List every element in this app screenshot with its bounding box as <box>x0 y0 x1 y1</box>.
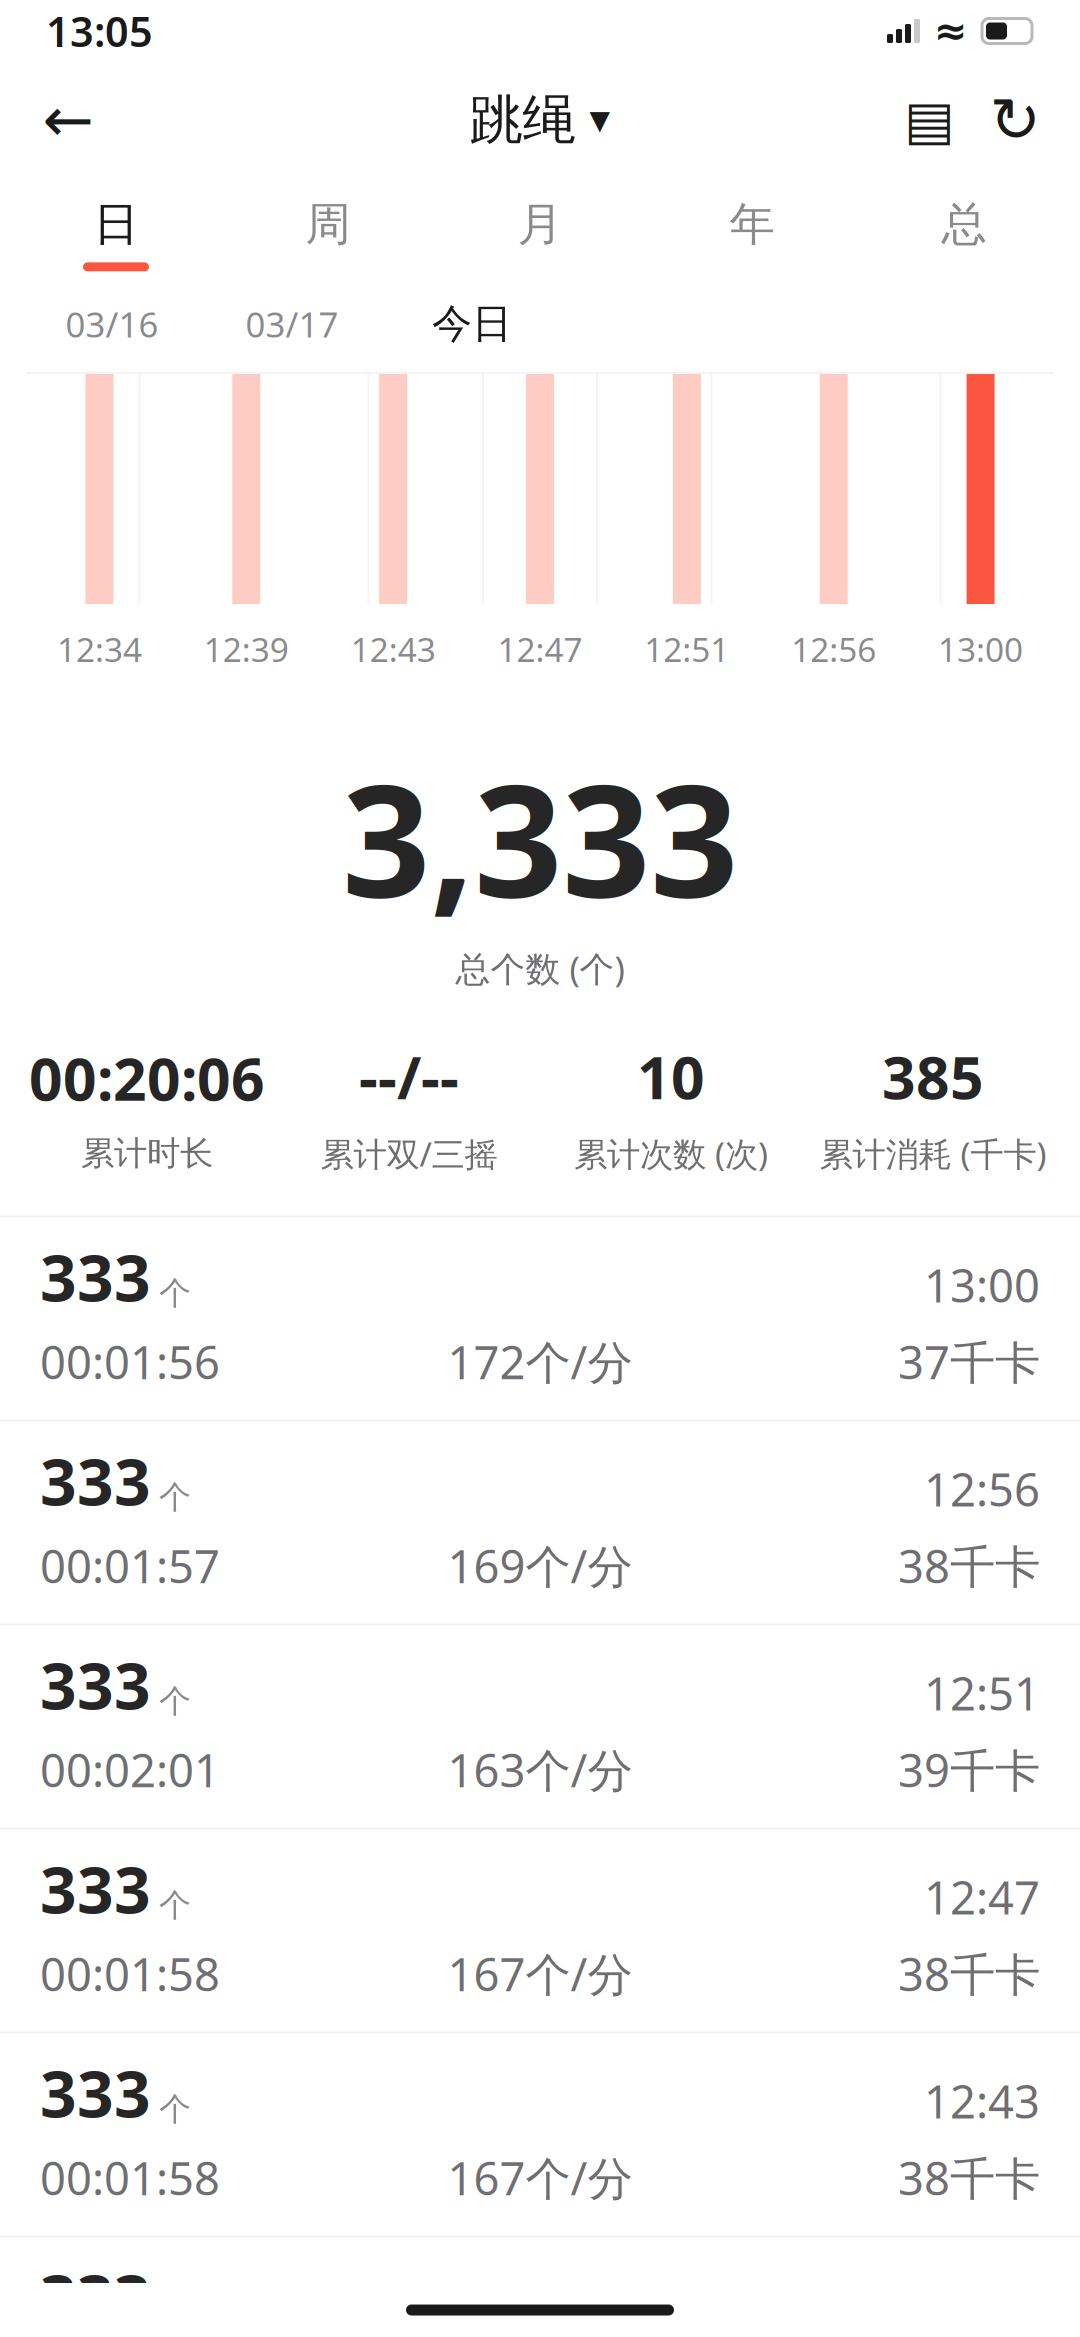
staticText: 13:05 <box>46 4 153 58</box>
staticText: 163个/分 <box>447 1739 632 1800</box>
staticText: 333 <box>40 2254 151 2337</box>
staticText: ≈ <box>934 8 968 54</box>
staticText: 个 <box>159 1682 191 1721</box>
staticText: 总 <box>941 197 986 252</box>
staticText: 00:02:01 <box>40 1739 220 1800</box>
staticText: 333 <box>40 1234 151 1319</box>
staticText: 12:56 <box>924 1459 1040 1519</box>
staticText: 10 <box>637 1037 705 1115</box>
staticText: 12:47 <box>497 627 582 671</box>
staticText: 00:01:57 <box>40 1535 220 1596</box>
staticText: 38千卡 <box>898 2147 1040 2208</box>
staticText: 跳绳 <box>469 87 575 153</box>
button[interactable]: History records <box>886 74 972 166</box>
staticText: 385 <box>882 1037 984 1115</box>
button[interactable]: 日 <box>10 178 222 290</box>
button[interactable]: Sync <box>972 74 1058 166</box>
staticText: 37千卡 <box>898 1331 1040 1392</box>
staticText: ▼ <box>589 105 610 135</box>
staticText: 00:01:58 <box>40 1943 220 2004</box>
staticText: 个 <box>159 2090 191 2129</box>
staticText: 12:39 <box>204 627 289 671</box>
button[interactable]: 333 <box>0 2034 1080 2236</box>
button[interactable]: 333 <box>0 1626 1080 1828</box>
staticText: 169个/分 <box>447 1535 632 1596</box>
staticText: ↻ <box>989 85 1040 155</box>
staticText: 12:51 <box>644 627 729 671</box>
button[interactable]: 333 <box>0 1422 1080 1624</box>
button[interactable]: 月 <box>434 178 646 290</box>
staticText: 累计消耗 (千卡) <box>819 1131 1046 1176</box>
staticText: 333 <box>40 1846 151 1931</box>
staticText: 03/17 <box>245 301 338 347</box>
staticText: 年 <box>729 197 774 252</box>
staticText: 12:51 <box>924 1663 1040 1723</box>
staticText: 个 <box>159 1478 191 1517</box>
staticText: 12:43 <box>924 2071 1040 2131</box>
staticText: 累计双/三摇 <box>320 1131 497 1176</box>
button[interactable]: 333 <box>0 1830 1080 2032</box>
staticText: 个 <box>159 1886 191 1925</box>
staticText: 00:01:58 <box>40 2147 220 2208</box>
staticText: 总个数 (个) <box>455 945 624 991</box>
staticText: 333 <box>40 1642 151 1727</box>
staticText: 333 <box>40 1438 151 1523</box>
staticText: 38千卡 <box>898 1943 1040 2004</box>
staticText: 12:43 <box>351 627 436 671</box>
staticText: 周 <box>305 197 350 252</box>
staticText: 累计时长 <box>81 1133 213 1174</box>
staticText: 累计次数 (次) <box>574 1131 768 1176</box>
staticText: 13:00 <box>938 627 1023 671</box>
staticText: 00:01:56 <box>40 1331 220 1392</box>
staticText: 13:00 <box>924 1255 1040 1315</box>
staticText: 172个/分 <box>447 1331 632 1392</box>
button[interactable]: 333 <box>0 1218 1080 1420</box>
button[interactable]: 03/17 <box>202 292 382 356</box>
staticText: 个 <box>159 1274 191 1313</box>
staticText: 00:20:06 <box>29 1039 265 1117</box>
staticText: 39千卡 <box>898 1739 1040 1800</box>
staticText: ← <box>42 85 93 155</box>
button[interactable]: 总 <box>858 178 1070 290</box>
staticText: 3,333 <box>342 734 738 939</box>
button[interactable]: 今日 <box>382 292 562 356</box>
staticText: ▤ <box>904 90 954 150</box>
staticText: 12:56 <box>791 627 876 671</box>
staticText: --/-- <box>359 1037 459 1115</box>
button[interactable]: 年 <box>646 178 858 290</box>
staticText: 12:34 <box>57 627 142 671</box>
staticText: 333 <box>40 2050 151 2135</box>
staticText: 日 <box>93 197 138 252</box>
button[interactable]: 333 <box>0 2238 1080 2337</box>
staticText: 167个/分 <box>447 2147 632 2208</box>
staticText: 月 <box>517 197 562 252</box>
staticText: 12:47 <box>924 1867 1040 1927</box>
staticText: 167个/分 <box>447 1943 632 2004</box>
staticText: 38千卡 <box>898 1535 1040 1596</box>
button[interactable]: 周 <box>222 178 434 290</box>
button[interactable]: 跳绳 <box>449 74 630 166</box>
staticText: 03/16 <box>65 301 158 347</box>
staticText: 今日 <box>432 299 512 348</box>
button[interactable]: 03/16 <box>22 292 202 356</box>
button[interactable]: Back <box>22 74 114 166</box>
